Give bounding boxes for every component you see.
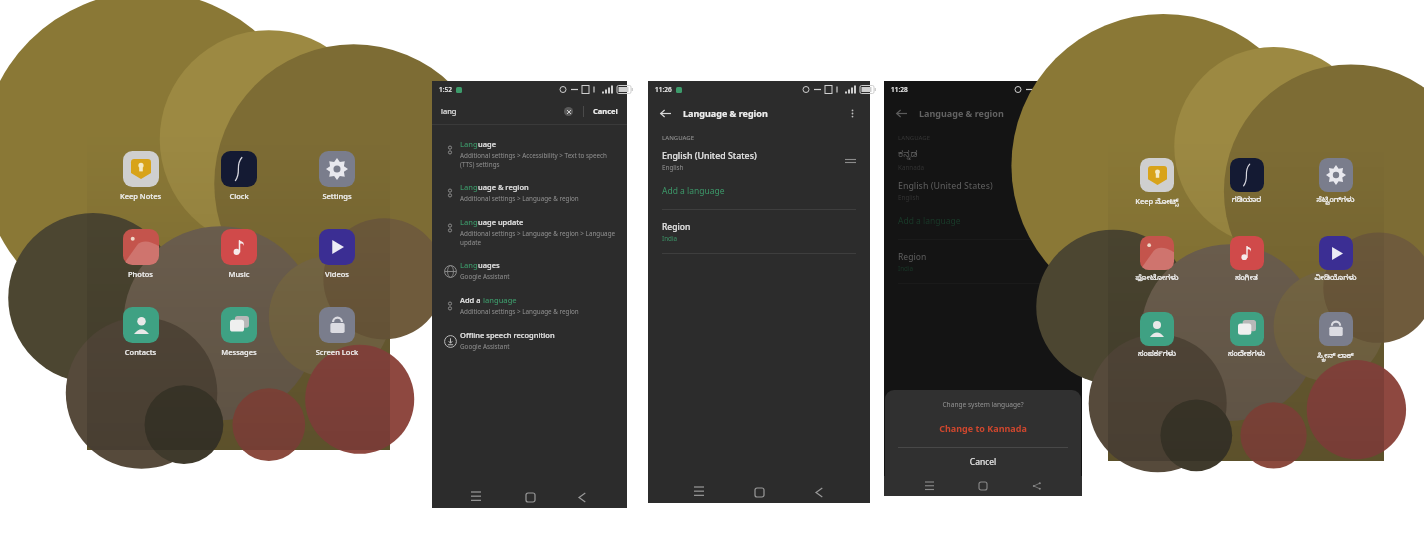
button[interactable]: Change to Kannada bbox=[885, 419, 1081, 437]
staticText: Kannada bbox=[898, 163, 925, 172]
button[interactable]: ಗಡಿಯಾರ bbox=[1202, 158, 1291, 206]
staticText: Lang bbox=[460, 182, 478, 192]
staticText: ಸ್ಕ್ರೀನ್ ಲಾಕ್ bbox=[1291, 350, 1380, 362]
button[interactable]: Lang bbox=[432, 212, 627, 251]
staticText: ವೀಡಿಯೊಗಳು bbox=[1291, 274, 1380, 284]
button[interactable]: Offline speech recognition bbox=[432, 325, 627, 356]
button[interactable]: Keep Notes bbox=[91, 151, 190, 201]
staticText: Language & region bbox=[683, 107, 768, 119]
button[interactable]: Home bbox=[974, 477, 992, 495]
staticText: English (United States) bbox=[898, 180, 993, 192]
button[interactable]: Cancel bbox=[593, 106, 618, 116]
button[interactable]: Recents bbox=[466, 487, 486, 507]
staticText: Add a language bbox=[898, 215, 961, 227]
button[interactable]: Clear bbox=[564, 107, 573, 116]
staticText: 1:52 bbox=[439, 85, 452, 94]
staticText: uage & region bbox=[478, 182, 529, 192]
staticText: Lang bbox=[460, 217, 478, 227]
staticText: uage bbox=[478, 139, 496, 149]
button[interactable]: Recents bbox=[920, 477, 938, 495]
staticText: uages bbox=[478, 260, 500, 270]
button[interactable]: ಸಂಪರ್ಕಗಳು bbox=[1112, 312, 1202, 360]
staticText: LANGUAGE bbox=[898, 134, 931, 142]
staticText: Screen Lock bbox=[288, 347, 386, 357]
button[interactable]: Lang bbox=[432, 177, 627, 208]
staticText: ಸಂಪರ್ಕಗಳು bbox=[1112, 350, 1202, 360]
staticText: Additional settings > Language & region bbox=[460, 194, 579, 203]
staticText: Contacts bbox=[91, 347, 190, 357]
staticText: ಸಂದೇಶಗಳು bbox=[1202, 350, 1291, 360]
button[interactable]: Photos bbox=[91, 229, 190, 279]
button[interactable]: Cancel bbox=[885, 448, 1081, 476]
staticText: Add a language bbox=[662, 185, 725, 197]
staticText: 11:26 bbox=[655, 85, 672, 94]
staticText: Offline speech recognition bbox=[460, 330, 555, 340]
staticText: Additional settings > Language & region bbox=[460, 307, 579, 316]
button[interactable]: ಸ್ಕ್ರೀನ್ ಲಾಕ್ bbox=[1291, 312, 1380, 362]
staticText: Add a bbox=[460, 295, 483, 305]
button[interactable]: Clock bbox=[190, 151, 288, 201]
button[interactable]: Back bbox=[573, 487, 593, 507]
button[interactable]: ಸಂದೇಶಗಳು bbox=[1202, 312, 1291, 360]
button[interactable]: Videos bbox=[288, 229, 386, 279]
button[interactable]: Lang bbox=[432, 255, 627, 286]
button[interactable]: Contacts bbox=[91, 307, 190, 357]
staticText: ಸಂಗೀತ bbox=[1202, 274, 1291, 284]
button[interactable]: English (United States) bbox=[648, 150, 870, 172]
button[interactable]: Home bbox=[520, 487, 540, 507]
button[interactable]: Home bbox=[749, 482, 769, 502]
button[interactable]: More options bbox=[845, 106, 860, 121]
staticText: Photos bbox=[91, 269, 190, 279]
button[interactable]: Back bbox=[894, 106, 909, 121]
staticText: English bbox=[898, 193, 920, 202]
staticText: Cancel bbox=[885, 456, 1081, 468]
staticText: Cancel bbox=[593, 106, 618, 116]
button[interactable]: Add a language bbox=[884, 213, 1082, 229]
staticText: ಕನ್ನಡ bbox=[898, 150, 918, 162]
staticText: India bbox=[662, 234, 678, 243]
button[interactable]: ವೀಡಿಯೊಗಳು bbox=[1291, 236, 1380, 284]
staticText: Music bbox=[190, 269, 288, 279]
button[interactable]: ಸೆಟ್ಟಿಂಗ್‌ಗಳು bbox=[1291, 158, 1380, 206]
staticText: Lang bbox=[460, 139, 478, 149]
button[interactable]: Back bbox=[658, 106, 673, 121]
button[interactable]: Screen Lock bbox=[288, 307, 386, 357]
staticText: Keep ನೋಟ್ಸ್ bbox=[1112, 196, 1202, 208]
staticText: Keep Notes bbox=[91, 191, 190, 201]
staticText: language bbox=[483, 295, 517, 305]
staticText: 11:28 bbox=[891, 85, 908, 94]
staticText: English (United States) bbox=[662, 150, 757, 162]
button[interactable]: Add a bbox=[432, 290, 627, 321]
button[interactable]: ಕನ್ನಡ bbox=[884, 150, 1082, 172]
staticText: Videos bbox=[288, 269, 386, 279]
button[interactable]: Add a language bbox=[648, 183, 870, 199]
button[interactable]: Share bbox=[1028, 477, 1046, 495]
button[interactable]: ಸಂಗೀತ bbox=[1202, 236, 1291, 284]
staticText: Additional settings > Accessibility > Te… bbox=[460, 151, 619, 168]
button[interactable]: Messages bbox=[190, 307, 288, 357]
button[interactable]: Recents bbox=[689, 482, 709, 502]
staticText: Language & region bbox=[919, 107, 1004, 119]
button[interactable]: Region bbox=[648, 221, 870, 243]
staticText: Google Assistant bbox=[460, 272, 510, 281]
staticText: uage update bbox=[478, 217, 524, 227]
button[interactable]: English (United States) bbox=[884, 180, 1082, 202]
button[interactable]: ಫೋಟೋಗಳು bbox=[1112, 236, 1202, 284]
staticText: Change system language? bbox=[885, 400, 1081, 409]
staticText: Region bbox=[898, 251, 927, 263]
staticText: Settings bbox=[288, 191, 386, 201]
button[interactable]: Music bbox=[190, 229, 288, 279]
staticText: English bbox=[662, 163, 684, 172]
button[interactable]: Lang bbox=[432, 134, 627, 173]
staticText: ಸೆಟ್ಟಿಂಗ್‌ಗಳು bbox=[1291, 196, 1380, 206]
staticText: LANGUAGE bbox=[662, 134, 695, 142]
staticText: Additional settings > Language & region … bbox=[460, 229, 619, 246]
button[interactable]: Settings bbox=[288, 151, 386, 201]
button[interactable]: Keep ನೋಟ್ಸ್ bbox=[1112, 158, 1202, 208]
button[interactable]: Region bbox=[884, 251, 1082, 273]
staticText: ಗಡಿಯಾರ bbox=[1202, 196, 1291, 206]
staticText: Messages bbox=[190, 347, 288, 357]
staticText: Change to Kannada bbox=[885, 422, 1081, 434]
button[interactable]: Back bbox=[810, 482, 830, 502]
